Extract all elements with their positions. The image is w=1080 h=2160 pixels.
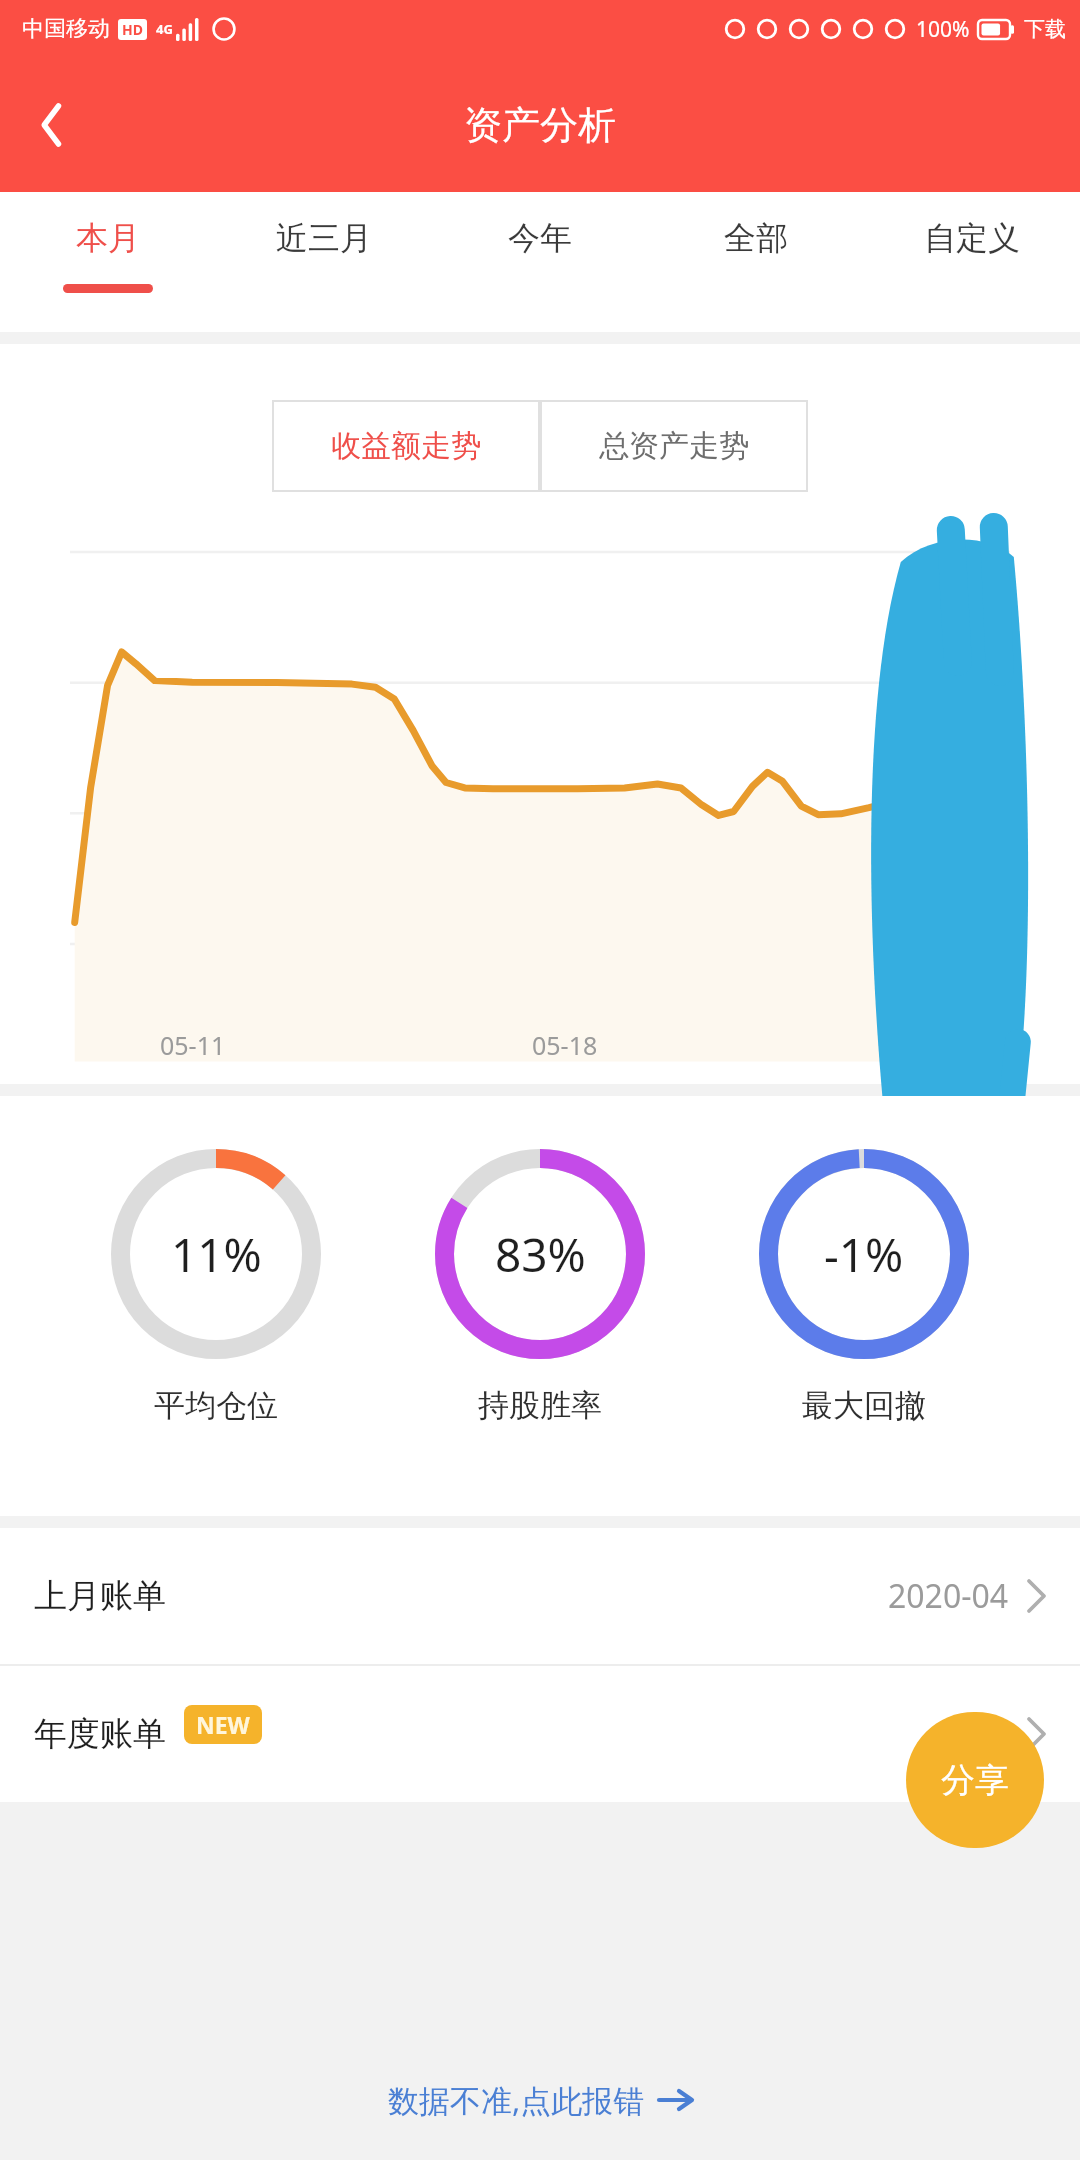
staticText: 05-11 [160,1028,226,1062]
button[interactable]: 全部 [648,192,864,332]
button[interactable]: 11% [108,1146,324,1425]
staticText: 83% [495,1223,586,1286]
staticText: 上月账单 [34,1575,166,1617]
button[interactable]: 数据不准,点此报错 [0,2040,1080,2160]
button[interactable]: 自定义 [864,192,1080,332]
button[interactable]: 83% [432,1146,648,1425]
staticText: 100% [916,15,970,44]
button[interactable]: 今年 [432,192,648,332]
staticText: 近三月 [276,218,372,258]
staticText: 总资产走势 [599,427,749,465]
button[interactable]: 收益额走势 [274,402,538,490]
staticText: 分享 [941,1759,1009,1802]
button[interactable]: 近三月 [216,192,432,332]
staticText: 平均仓位 [154,1386,278,1425]
button[interactable]: 总资产走势 [542,402,806,490]
staticText: 4G [156,20,173,38]
button[interactable]: 年度账单 [0,1666,1080,1802]
staticText: 中国移动 [22,15,110,43]
staticText: 本月 [76,218,140,258]
staticText: 全部 [724,218,788,258]
staticText: -1% [824,1223,904,1286]
button[interactable]: 分享 [906,1712,1044,1848]
staticText: 数据不准,点此报错 [388,2079,645,2121]
button[interactable]: 本月 [0,192,216,332]
staticText: 收益额走势 [331,427,481,465]
button[interactable]: -1% [756,1146,972,1425]
staticText: 最大回撤 [802,1386,926,1425]
staticText: NEW [196,1709,250,1740]
staticText: HD [122,20,143,39]
staticText: 资产分析 [464,101,616,149]
staticText: 下载 [1024,16,1066,42]
staticText: 年度账单 [34,1713,166,1755]
staticText: 11% [171,1223,262,1286]
button[interactable]: 上月账单 [0,1528,1080,1664]
staticText: 自定义 [924,218,1020,258]
button[interactable]: Back [16,89,88,161]
staticText: 2020-04 [888,1574,1009,1618]
staticText: 持股胜率 [478,1386,602,1425]
staticText: 今年 [508,218,572,258]
staticText: 05-18 [532,1028,598,1062]
